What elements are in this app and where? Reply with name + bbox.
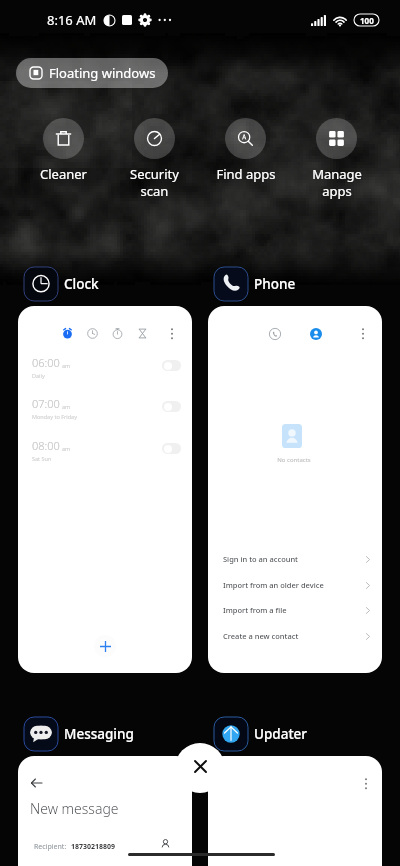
staticText: 8:16 AM — [47, 11, 97, 29]
button[interactable]: Stopwatch — [112, 328, 123, 339]
staticText: Import from a file — [223, 605, 287, 615]
staticText: 18730218809 — [71, 842, 116, 852]
staticText: Messaging — [64, 725, 134, 743]
button[interactable]: Cleaner — [18, 118, 109, 183]
staticText: Sign in to an account — [223, 554, 298, 564]
staticText: Import from an older device — [223, 580, 324, 590]
staticText: am — [62, 362, 71, 369]
staticText: Monday to Friday — [32, 413, 77, 420]
staticText: Recipient: — [34, 842, 67, 852]
button[interactable]: Back — [18, 756, 192, 866]
button[interactable]: Find apps — [200, 118, 291, 183]
button[interactable]: Alarm — [18, 306, 192, 673]
button[interactable]: More options — [170, 328, 174, 340]
staticText: Updater — [254, 725, 308, 743]
button[interactable]: Updater — [214, 717, 308, 751]
staticText: 07:00 — [32, 396, 60, 411]
staticText: Manage apps — [312, 165, 362, 200]
button[interactable]: Clock — [87, 328, 98, 339]
button[interactable]: Import from a file — [208, 599, 382, 621]
button[interactable]: More options — [364, 778, 368, 790]
button[interactable]: Back — [31, 778, 42, 788]
staticText: 100 — [360, 15, 374, 26]
button[interactable]: Phone — [214, 267, 296, 301]
button[interactable]: Manage apps — [291, 118, 382, 200]
staticText: am — [62, 445, 71, 452]
button[interactable]: Floating windows — [16, 58, 168, 88]
button[interactable]: Timer — [137, 328, 148, 339]
button[interactable]: Toggle alarm — [162, 401, 181, 412]
staticText: Create a new contact — [223, 631, 299, 641]
staticText: Clock — [64, 275, 99, 293]
staticText: Find apps — [216, 165, 276, 183]
button[interactable]: Clock — [24, 267, 99, 301]
button[interactable]: Close all — [175, 743, 225, 793]
button[interactable]: Recents — [208, 306, 382, 673]
staticText: Floating windows — [49, 64, 156, 82]
staticText: Phone — [254, 275, 296, 293]
staticText: am — [62, 403, 71, 410]
button[interactable]: Pick contact — [161, 839, 170, 849]
button[interactable]: Toggle alarm — [162, 360, 181, 371]
button[interactable]: Add alarm — [94, 635, 116, 657]
staticText: Sat Sun — [32, 455, 52, 462]
button[interactable]: Contacts — [310, 328, 322, 340]
button[interactable]: 07:00 — [18, 396, 192, 422]
button[interactable]: Create a new contact — [208, 625, 382, 647]
button[interactable]: Toggle alarm — [162, 443, 181, 454]
button[interactable]: More options — [361, 328, 365, 340]
button[interactable]: Sign in to an account — [208, 548, 382, 570]
button[interactable]: Recents — [269, 328, 281, 340]
staticText: Cleaner — [40, 165, 87, 183]
staticText: 08:00 — [32, 438, 60, 453]
button[interactable]: 08:00 — [18, 438, 192, 464]
staticText: Daily — [32, 372, 45, 379]
button[interactable]: Messaging — [24, 717, 134, 751]
staticText: Security scan — [130, 165, 179, 200]
button[interactable]: More options — [208, 756, 382, 866]
button[interactable]: 06:00 — [18, 355, 192, 381]
button[interactable]: Import from an older device — [208, 574, 382, 596]
staticText: New message — [30, 799, 119, 818]
staticText: 06:00 — [32, 355, 60, 370]
staticText: No contacts — [208, 456, 380, 464]
button[interactable]: Security scan — [109, 118, 200, 200]
button[interactable]: Alarm — [62, 328, 73, 339]
